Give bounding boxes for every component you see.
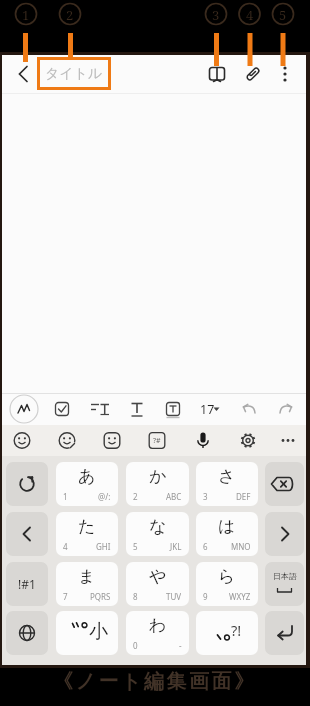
button[interactable]: [6, 512, 48, 556]
button[interactable]: [265, 611, 304, 655]
staticText: ?#: [153, 436, 161, 446]
staticText: か: [149, 466, 167, 487]
staticText: 8: [133, 591, 138, 602]
staticText: DEF: [236, 491, 251, 502]
staticText: -: [179, 640, 182, 651]
button[interactable]: [265, 462, 304, 506]
button[interactable]: [6, 462, 48, 506]
staticText: 9: [203, 591, 208, 602]
staticText: 日本語: [273, 571, 297, 581]
button[interactable]: さ: [196, 462, 258, 506]
staticText: JKL: [170, 541, 182, 552]
staticText: 0: [133, 640, 138, 651]
button[interactable]: や: [126, 562, 189, 606]
staticText: 3: [212, 6, 220, 24]
button[interactable]: た: [56, 512, 118, 556]
staticText: TUV: [166, 591, 182, 602]
button[interactable]: ?!: [196, 611, 258, 655]
button[interactable]: [265, 512, 304, 556]
staticText: わ: [149, 615, 167, 636]
button[interactable]: !#1: [6, 562, 48, 606]
staticText: MNO: [231, 541, 251, 552]
staticText: !#1: [18, 576, 36, 592]
staticText: 5: [133, 541, 138, 552]
staticText: 3: [203, 491, 208, 502]
staticText: 6: [203, 541, 208, 552]
button[interactable]: あ: [56, 462, 118, 506]
staticText: や: [149, 566, 167, 587]
button[interactable]: 小: [56, 611, 118, 655]
staticText: 小: [89, 620, 108, 644]
button[interactable]: な: [126, 512, 189, 556]
staticText: あ: [78, 466, 96, 487]
button[interactable]: ら: [196, 562, 258, 606]
button[interactable]: わ: [126, 611, 189, 655]
button[interactable]: [6, 611, 48, 655]
staticText: ら: [218, 566, 236, 587]
staticText: た: [78, 516, 96, 537]
staticText: ?!: [231, 620, 242, 640]
button[interactable]: は: [196, 512, 258, 556]
staticText: ま: [78, 566, 96, 587]
staticText: 1: [22, 6, 30, 24]
staticText: WXYZ: [229, 591, 251, 602]
staticText: 4: [63, 541, 68, 552]
button[interactable]: [205, 62, 229, 86]
staticText: PQRS: [90, 591, 111, 602]
button[interactable]: [12, 62, 36, 86]
staticText: 2: [133, 491, 138, 502]
button[interactable]: [273, 62, 297, 86]
button[interactable]: [241, 62, 265, 86]
button[interactable]: 日本語: [265, 562, 304, 606]
staticText: は: [218, 516, 236, 537]
staticText: @/:: [98, 491, 111, 502]
staticText: 17: [200, 401, 215, 418]
staticText: 5: [279, 6, 287, 24]
button[interactable]: ま: [56, 562, 118, 606]
staticText: 1: [63, 491, 68, 502]
staticText: さ: [218, 466, 236, 487]
staticText: 2: [66, 6, 74, 24]
staticText: GHI: [96, 541, 111, 552]
staticText: な: [149, 516, 167, 537]
staticText: 7: [63, 591, 68, 602]
button[interactable]: か: [126, 462, 189, 506]
staticText: ABC: [166, 491, 182, 502]
staticText: 4: [246, 6, 254, 24]
staticText: タイトル: [45, 65, 103, 83]
staticText: 《ノート編集画面》: [53, 669, 257, 694]
